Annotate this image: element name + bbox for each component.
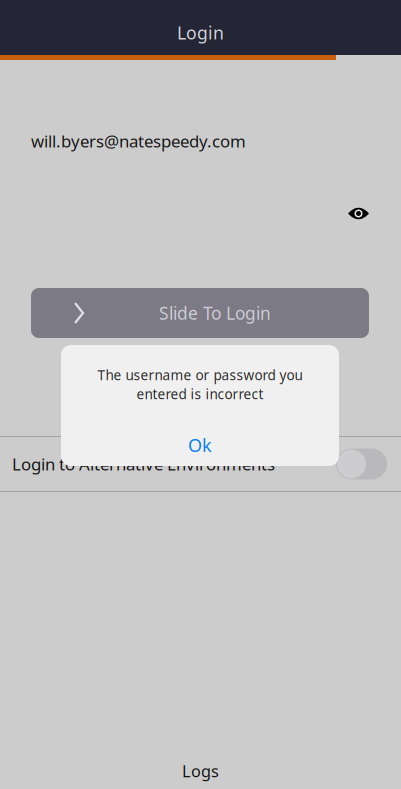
button[interactable]: Login to Alternative Environments — [0, 437, 401, 491]
button[interactable]: will.byers@natespeedy.com — [31, 119, 371, 163]
staticText: Login to Alternative Environments — [12, 453, 275, 475]
staticText: Login — [177, 21, 224, 44]
button[interactable]: Slide To Login — [31, 288, 369, 338]
staticText: Logs — [182, 760, 219, 782]
button[interactable]: Logs — [0, 756, 401, 786]
staticText: The username or password you — [97, 366, 302, 384]
staticText: Ok — [188, 433, 212, 457]
button[interactable]: Show password — [339, 198, 378, 229]
staticText: entered is incorrect — [136, 385, 263, 403]
staticText: Slide To Login — [159, 301, 271, 324]
button[interactable]: Ok — [61, 424, 339, 466]
staticText: will.byers@natespeedy.com — [31, 130, 246, 152]
